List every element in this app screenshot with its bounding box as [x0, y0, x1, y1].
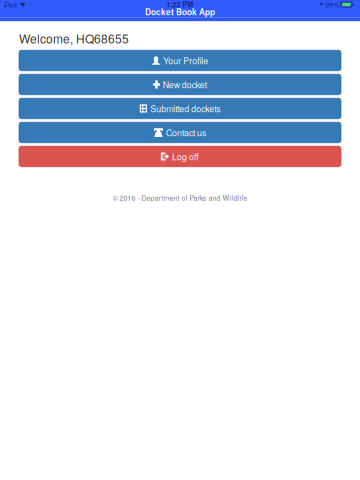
- button[interactable]: Submitted dockets: [19, 98, 341, 119]
- staticText: Submitted dockets: [150, 102, 220, 115]
- button[interactable]: New docket: [19, 74, 341, 95]
- staticText: © 2016 - Department of Parks and Wildlif…: [112, 193, 247, 203]
- button[interactable]: Docket Book App: [0, 9, 360, 21]
- staticText: iPad: [4, 0, 17, 9]
- staticText: 99%: [325, 0, 339, 9]
- staticText: Your Profile: [163, 54, 208, 67]
- button[interactable]: Log off: [19, 146, 341, 167]
- staticText: Contact us: [166, 126, 206, 139]
- staticText: New docket: [163, 78, 207, 91]
- staticText: Docket Book App: [145, 6, 215, 18]
- staticText: 1:22 PM: [166, 0, 193, 9]
- button[interactable]: Your Profile: [19, 50, 341, 71]
- staticText: Log off: [172, 150, 199, 163]
- staticText: Welcome, HQ68655: [19, 30, 129, 47]
- button[interactable]: Contact us: [19, 122, 341, 143]
